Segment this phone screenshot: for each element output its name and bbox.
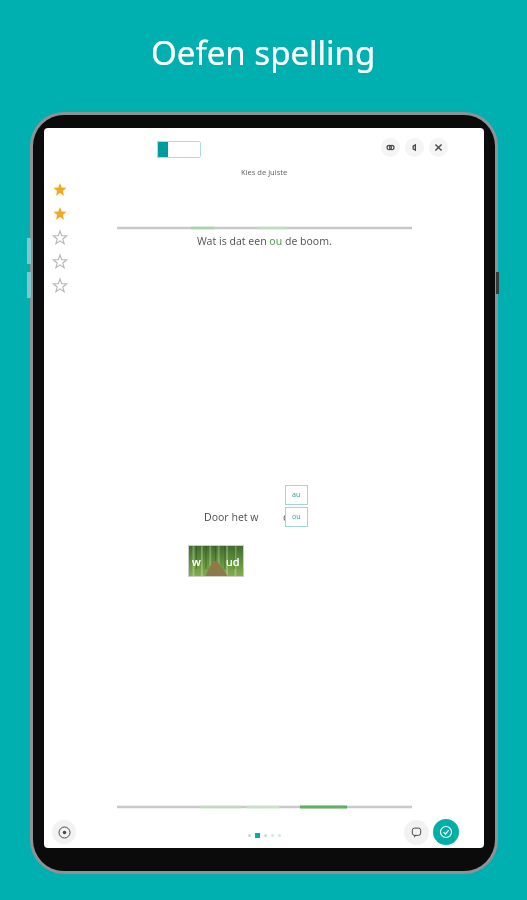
button[interactable]: Close: [429, 138, 448, 157]
staticText: ud: [226, 554, 240, 569]
button[interactable]: Check answer: [433, 819, 459, 845]
button[interactable]: [157, 141, 201, 158]
staticText: d.: [283, 510, 293, 524]
staticText: ou: [292, 512, 301, 522]
staticText: au: [292, 490, 301, 500]
staticText: Kies de juiste: [241, 167, 288, 177]
staticText: Wat is dat een ou de boom.: [197, 234, 332, 248]
button[interactable]: ou: [285, 507, 308, 527]
staticText: Door het w: [204, 510, 259, 524]
button[interactable]: Sound: [405, 138, 424, 157]
button[interactable]: Hint: [404, 820, 429, 845]
button[interactable]: Help: [52, 820, 76, 844]
staticText: w: [192, 554, 201, 569]
button[interactable]: w: [188, 545, 244, 577]
button[interactable]: au: [285, 485, 308, 505]
button[interactable]: Settings: [381, 138, 400, 157]
staticText: Oefen spelling: [151, 30, 376, 75]
